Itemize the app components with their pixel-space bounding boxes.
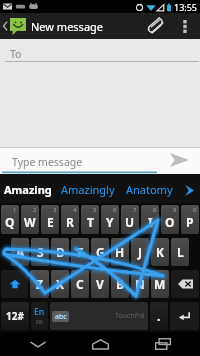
- staticText: New message: [31, 19, 104, 34]
- other: Navigate up: [2, 20, 8, 32]
- button[interactable]: Send: [158, 148, 200, 174]
- button[interactable]: Y: [101, 205, 119, 234]
- button[interactable]: Recent apps: [138, 332, 188, 356]
- button[interactable]: B: [111, 270, 129, 298]
- staticText: FR: [36, 318, 43, 326]
- staticText: P: [186, 214, 194, 230]
- staticText: To: [10, 47, 22, 61]
- button[interactable]: Z: [30, 270, 49, 298]
- staticText: En: [34, 306, 45, 318]
- staticText: X: [56, 276, 65, 292]
- button[interactable]: L: [171, 238, 189, 266]
- button[interactable]: Anatomy: [120, 174, 178, 203]
- button[interactable]: G: [91, 238, 109, 266]
- button[interactable]: D: [51, 238, 69, 266]
- staticText: O: [165, 214, 175, 230]
- button[interactable]: Q: [1, 205, 19, 234]
- button[interactable]: E: [41, 205, 59, 234]
- staticText: Q: [5, 214, 15, 230]
- staticText: W: [24, 214, 36, 230]
- button[interactable]: Home: [75, 332, 125, 356]
- staticText: 12#: [6, 309, 24, 323]
- button[interactable]: Switch language: [31, 302, 48, 330]
- staticText: 6: [113, 206, 117, 214]
- staticText: abc: [55, 312, 67, 322]
- staticText: E: [47, 214, 54, 230]
- button[interactable]: .: [150, 302, 168, 330]
- button[interactable]: Backspace: [171, 270, 199, 298]
- button[interactable]: J: [131, 238, 149, 266]
- staticText: 4: [73, 206, 77, 214]
- staticText: M: [154, 276, 166, 292]
- button[interactable]: Navigate up: [0, 13, 104, 39]
- button[interactable]: P: [181, 205, 199, 234]
- button[interactable]: Type message: [0, 148, 158, 174]
- button[interactable]: Amazing: [0, 174, 56, 203]
- staticText: Z: [36, 276, 43, 292]
- staticText: 8: [153, 206, 157, 214]
- staticText: N: [135, 276, 145, 292]
- button[interactable]: I: [141, 205, 159, 234]
- staticText: Y: [106, 214, 114, 230]
- button[interactable]: 12#: [1, 302, 29, 330]
- staticText: V: [96, 276, 104, 292]
- button[interactable]: R: [61, 205, 79, 234]
- button[interactable]: Attach: [141, 13, 170, 39]
- staticText: I: [148, 214, 153, 230]
- button[interactable]: To: [0, 39, 200, 62]
- button[interactable]: Space: [50, 302, 148, 330]
- staticText: 9: [173, 206, 177, 214]
- staticText: 1: [13, 206, 17, 214]
- staticText: 2: [33, 206, 37, 214]
- button[interactable]: F: [71, 238, 89, 266]
- staticText: A: [16, 244, 25, 260]
- staticText: G: [96, 244, 105, 260]
- button[interactable]: V: [91, 270, 109, 298]
- button[interactable]: More suggestions: [178, 174, 200, 203]
- staticText: L: [177, 244, 184, 260]
- staticText: Type message: [12, 155, 83, 169]
- staticText: F: [77, 244, 84, 260]
- staticText: C: [76, 276, 84, 292]
- button[interactable]: Amazingly: [56, 174, 120, 203]
- staticText: D: [56, 244, 65, 260]
- button[interactable]: C: [71, 270, 89, 298]
- button[interactable]: O: [161, 205, 179, 234]
- staticText: Amazing: [4, 182, 52, 197]
- staticText: TouchPal: [115, 311, 145, 321]
- button[interactable]: K: [151, 238, 169, 266]
- staticText: B: [116, 276, 124, 292]
- staticText: R: [66, 214, 74, 230]
- staticText: K: [156, 244, 164, 260]
- button[interactable]: S: [31, 238, 49, 266]
- button[interactable]: M: [151, 270, 169, 298]
- staticText: 7: [133, 206, 137, 214]
- button[interactable]: More options: [170, 13, 200, 39]
- staticText: 0: [193, 206, 197, 214]
- staticText: 3: [53, 206, 57, 214]
- staticText: .: [157, 308, 161, 324]
- button[interactable]: H: [111, 238, 129, 266]
- staticText: 13:55: [174, 1, 198, 13]
- staticText: H: [115, 244, 125, 260]
- button[interactable]: T: [81, 205, 99, 234]
- staticText: T: [87, 214, 94, 230]
- staticText: S: [37, 244, 44, 260]
- button[interactable]: W: [21, 205, 39, 234]
- button[interactable]: Back: [13, 332, 63, 356]
- staticText: Amazingly: [61, 182, 115, 197]
- staticText: Anatomy: [126, 182, 173, 197]
- button[interactable]: U: [121, 205, 139, 234]
- staticText: J: [138, 244, 142, 260]
- button[interactable]: Enter: [170, 302, 199, 330]
- button[interactable]: N: [131, 270, 149, 298]
- button[interactable]: X: [51, 270, 69, 298]
- staticText: 5: [93, 206, 97, 214]
- staticText: U: [125, 214, 135, 230]
- button[interactable]: A: [11, 238, 29, 266]
- button[interactable]: Shift: [1, 270, 28, 298]
